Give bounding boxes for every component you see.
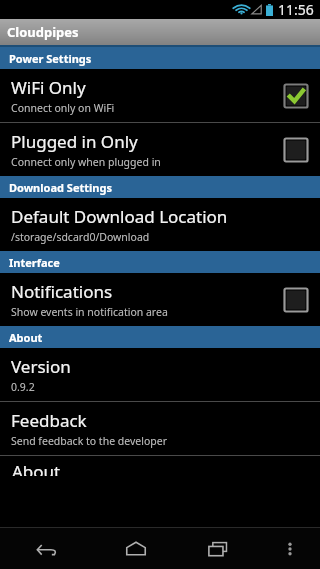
button[interactable]: Recent apps	[177, 528, 260, 569]
staticText: WiFi Only	[11, 76, 86, 99]
button[interactable]: More options	[260, 528, 320, 569]
staticText: Connect only when plugged in	[11, 155, 161, 169]
staticText: Download Settings	[9, 180, 112, 195]
button[interactable]: Plugged in Only	[0, 123, 320, 176]
staticText: /storage/sdcard0/Download	[11, 230, 150, 244]
button[interactable]: Back	[0, 528, 94, 569]
staticText: Show events in notification area	[11, 305, 168, 319]
button[interactable]: Home	[94, 528, 177, 569]
button[interactable]: Unchecked	[283, 287, 309, 313]
button[interactable]: WiFi Only	[0, 69, 320, 122]
staticText: Version	[11, 355, 71, 378]
staticText: Connect only on WiFi	[11, 101, 115, 115]
button[interactable]: Feedback	[0, 402, 320, 455]
staticText: 11:56	[278, 0, 314, 19]
staticText: About	[9, 330, 43, 345]
staticText: Notifications	[11, 280, 113, 303]
staticText: Send feedback to the developer	[11, 434, 168, 448]
staticText: Power Settings	[9, 51, 92, 66]
staticText: Plugged in Only	[11, 130, 138, 153]
button[interactable]: Version	[0, 348, 320, 401]
button[interactable]: Unchecked	[283, 137, 309, 163]
staticText: Cloudpipes	[7, 23, 79, 41]
staticText: 0.9.2	[11, 380, 35, 394]
button[interactable]: Default Download Location	[0, 198, 320, 251]
button[interactable]: Checked	[283, 83, 309, 109]
staticText: Interface	[9, 255, 60, 270]
staticText: Feedback	[11, 409, 87, 432]
button[interactable]: Notifications	[0, 273, 320, 326]
staticText: About	[12, 460, 61, 476]
staticText: Default Download Location	[11, 205, 228, 228]
